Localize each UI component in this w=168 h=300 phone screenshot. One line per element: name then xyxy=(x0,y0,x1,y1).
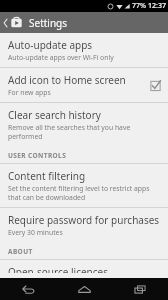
button[interactable]: Navigate up xyxy=(0,12,25,33)
staticText: ABOUT xyxy=(8,247,33,256)
staticText: Every 30 minutes xyxy=(8,228,63,237)
staticText: Auto-update apps over Wi-Fi only xyxy=(8,53,114,62)
button[interactable]: Back xyxy=(0,278,56,300)
staticText: Content filtering xyxy=(8,169,86,183)
staticText: For new apps xyxy=(8,88,51,97)
button[interactable]: Require password for purchases xyxy=(0,208,168,242)
button[interactable]: Add icon to Home screen checkbox xyxy=(149,79,162,92)
button[interactable]: Recent apps xyxy=(112,278,168,300)
staticText: Require password for purchases xyxy=(8,213,160,227)
staticText: 77% xyxy=(132,1,146,11)
staticText: 12:37 xyxy=(148,1,166,11)
staticText: USER CONTROLS xyxy=(8,151,67,160)
staticText: Settings xyxy=(29,16,68,30)
staticText: Open-source licences xyxy=(8,265,108,273)
button[interactable]: Clear search history xyxy=(0,103,168,146)
button[interactable]: Auto-update apps xyxy=(0,33,168,67)
staticText: Remove all the searches that you have pe… xyxy=(8,123,162,141)
staticText: Set the content filtering level to restr… xyxy=(8,184,162,202)
staticText: Clear search history xyxy=(8,108,101,122)
button[interactable]: Home xyxy=(56,278,112,300)
button[interactable]: Content filtering xyxy=(0,164,168,207)
staticText: Add icon to Home screen xyxy=(8,73,126,87)
staticText: Auto-update apps xyxy=(8,38,93,52)
button[interactable]: Add icon to Home screen xyxy=(0,68,168,102)
button[interactable]: Open-source licences xyxy=(0,260,168,278)
